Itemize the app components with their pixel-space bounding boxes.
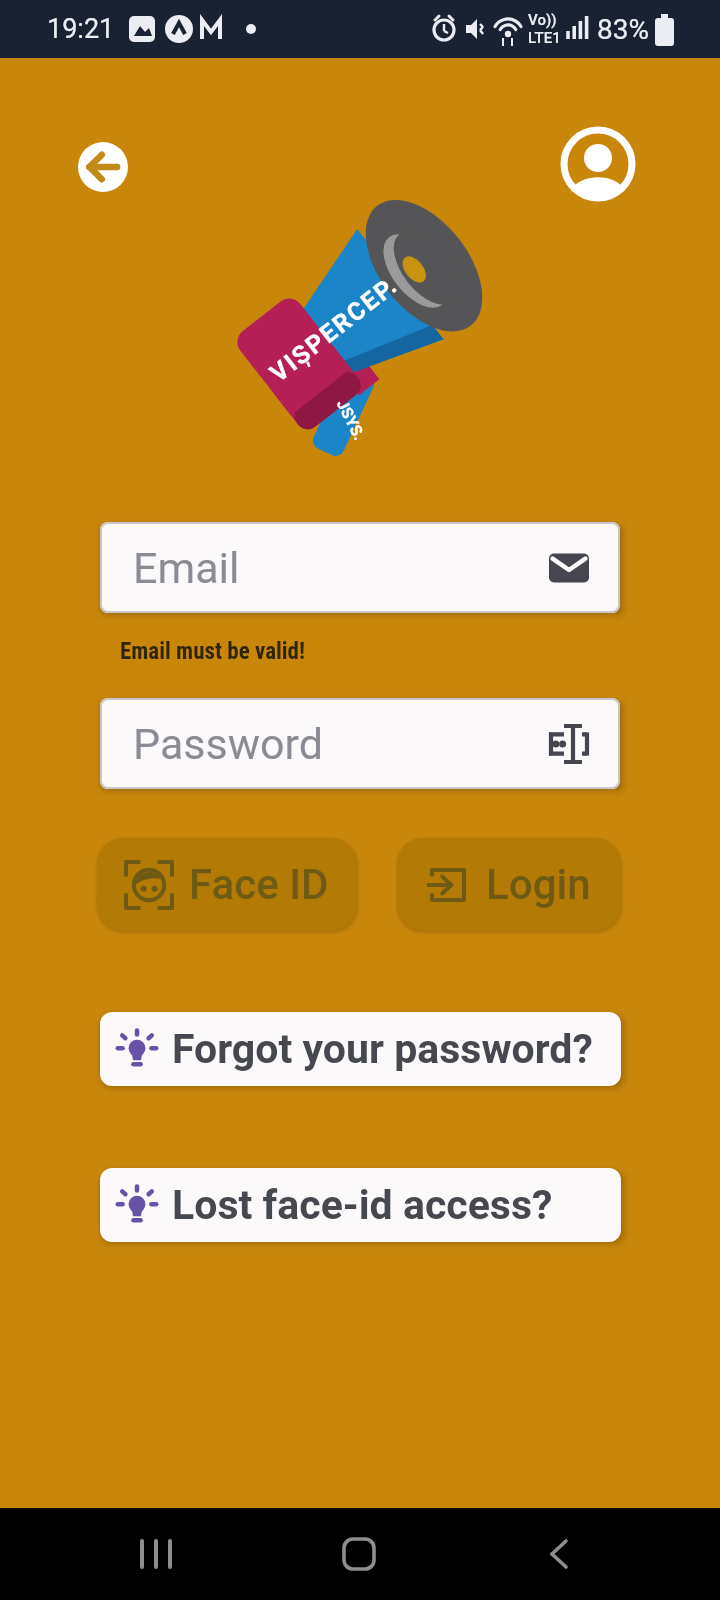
staticText: Login (486, 860, 591, 909)
button[interactable]: Forgot your password? (100, 1012, 621, 1086)
staticText: Email (133, 543, 240, 593)
staticText: Face ID (189, 860, 329, 909)
staticText: Password (133, 719, 323, 769)
staticText: 83% (597, 13, 649, 46)
button[interactable]: Lost face-id access? (100, 1168, 621, 1242)
staticText: LTE1 (528, 29, 561, 47)
staticText: Lost face-id access? (172, 1181, 553, 1229)
button[interactable] (560, 126, 636, 202)
button[interactable] (530, 1533, 586, 1577)
staticText: Vo)) (528, 11, 557, 29)
button[interactable]: Email (100, 522, 620, 613)
staticText: Email must be valid! (120, 638, 305, 665)
staticText: Forgot your password? (172, 1025, 593, 1073)
button[interactable] (120, 1533, 184, 1577)
button[interactable] (78, 142, 128, 192)
staticText: 19:21 (47, 13, 115, 45)
button[interactable]: Face ID (97, 838, 357, 931)
button[interactable]: Password (100, 698, 620, 789)
button[interactable] (330, 1533, 386, 1577)
button[interactable]: Login (397, 838, 621, 931)
